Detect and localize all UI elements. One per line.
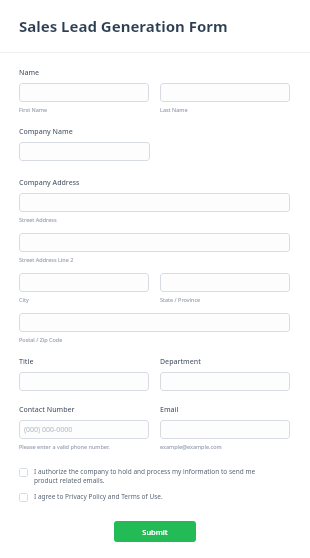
staticText: Submit	[142, 527, 168, 537]
staticText: Contact Number	[19, 405, 75, 415]
button[interactable]: I authorize the company to hold and proc…	[19, 465, 310, 487]
button[interactable]	[19, 193, 290, 212]
staticText: I agree to Privacy Policy and Terms of U…	[34, 492, 274, 501]
staticText: First Name	[19, 106, 48, 113]
button[interactable]	[160, 273, 290, 292]
staticText: example@example.com	[160, 443, 222, 450]
button[interactable]	[19, 142, 150, 161]
button[interactable]	[160, 420, 290, 439]
button[interactable]	[19, 273, 149, 292]
staticText: Postal / Zip Code	[19, 336, 63, 343]
staticText: State / Province	[160, 296, 201, 303]
staticText: I authorize the company to hold and proc…	[34, 467, 274, 485]
button[interactable]	[19, 372, 149, 391]
button[interactable]: I agree to Privacy Policy and Terms of U…	[19, 490, 310, 504]
staticText: Company Name	[19, 127, 73, 137]
staticText: Email	[160, 405, 179, 415]
button[interactable]	[19, 83, 149, 102]
button[interactable]	[19, 313, 290, 332]
staticText: Title	[19, 357, 34, 367]
button[interactable]: Submit	[114, 521, 196, 542]
button[interactable]	[160, 372, 290, 391]
staticText: Department	[160, 357, 201, 367]
staticText: City	[19, 296, 29, 303]
staticText: Name	[19, 68, 40, 78]
staticText: Company Address	[19, 178, 80, 188]
staticText: Last Name	[160, 106, 188, 113]
button[interactable]	[160, 83, 290, 102]
staticText: Street Address Line 2	[19, 256, 74, 263]
staticText: Sales Lead Generation Form	[19, 16, 228, 36]
staticText: Please enter a valid phone number.	[19, 443, 110, 450]
button[interactable]	[19, 233, 290, 252]
staticText: Street Address	[19, 216, 57, 223]
staticText: (000) 000-0000	[24, 425, 73, 435]
button[interactable]: (000) 000-0000	[19, 420, 149, 439]
